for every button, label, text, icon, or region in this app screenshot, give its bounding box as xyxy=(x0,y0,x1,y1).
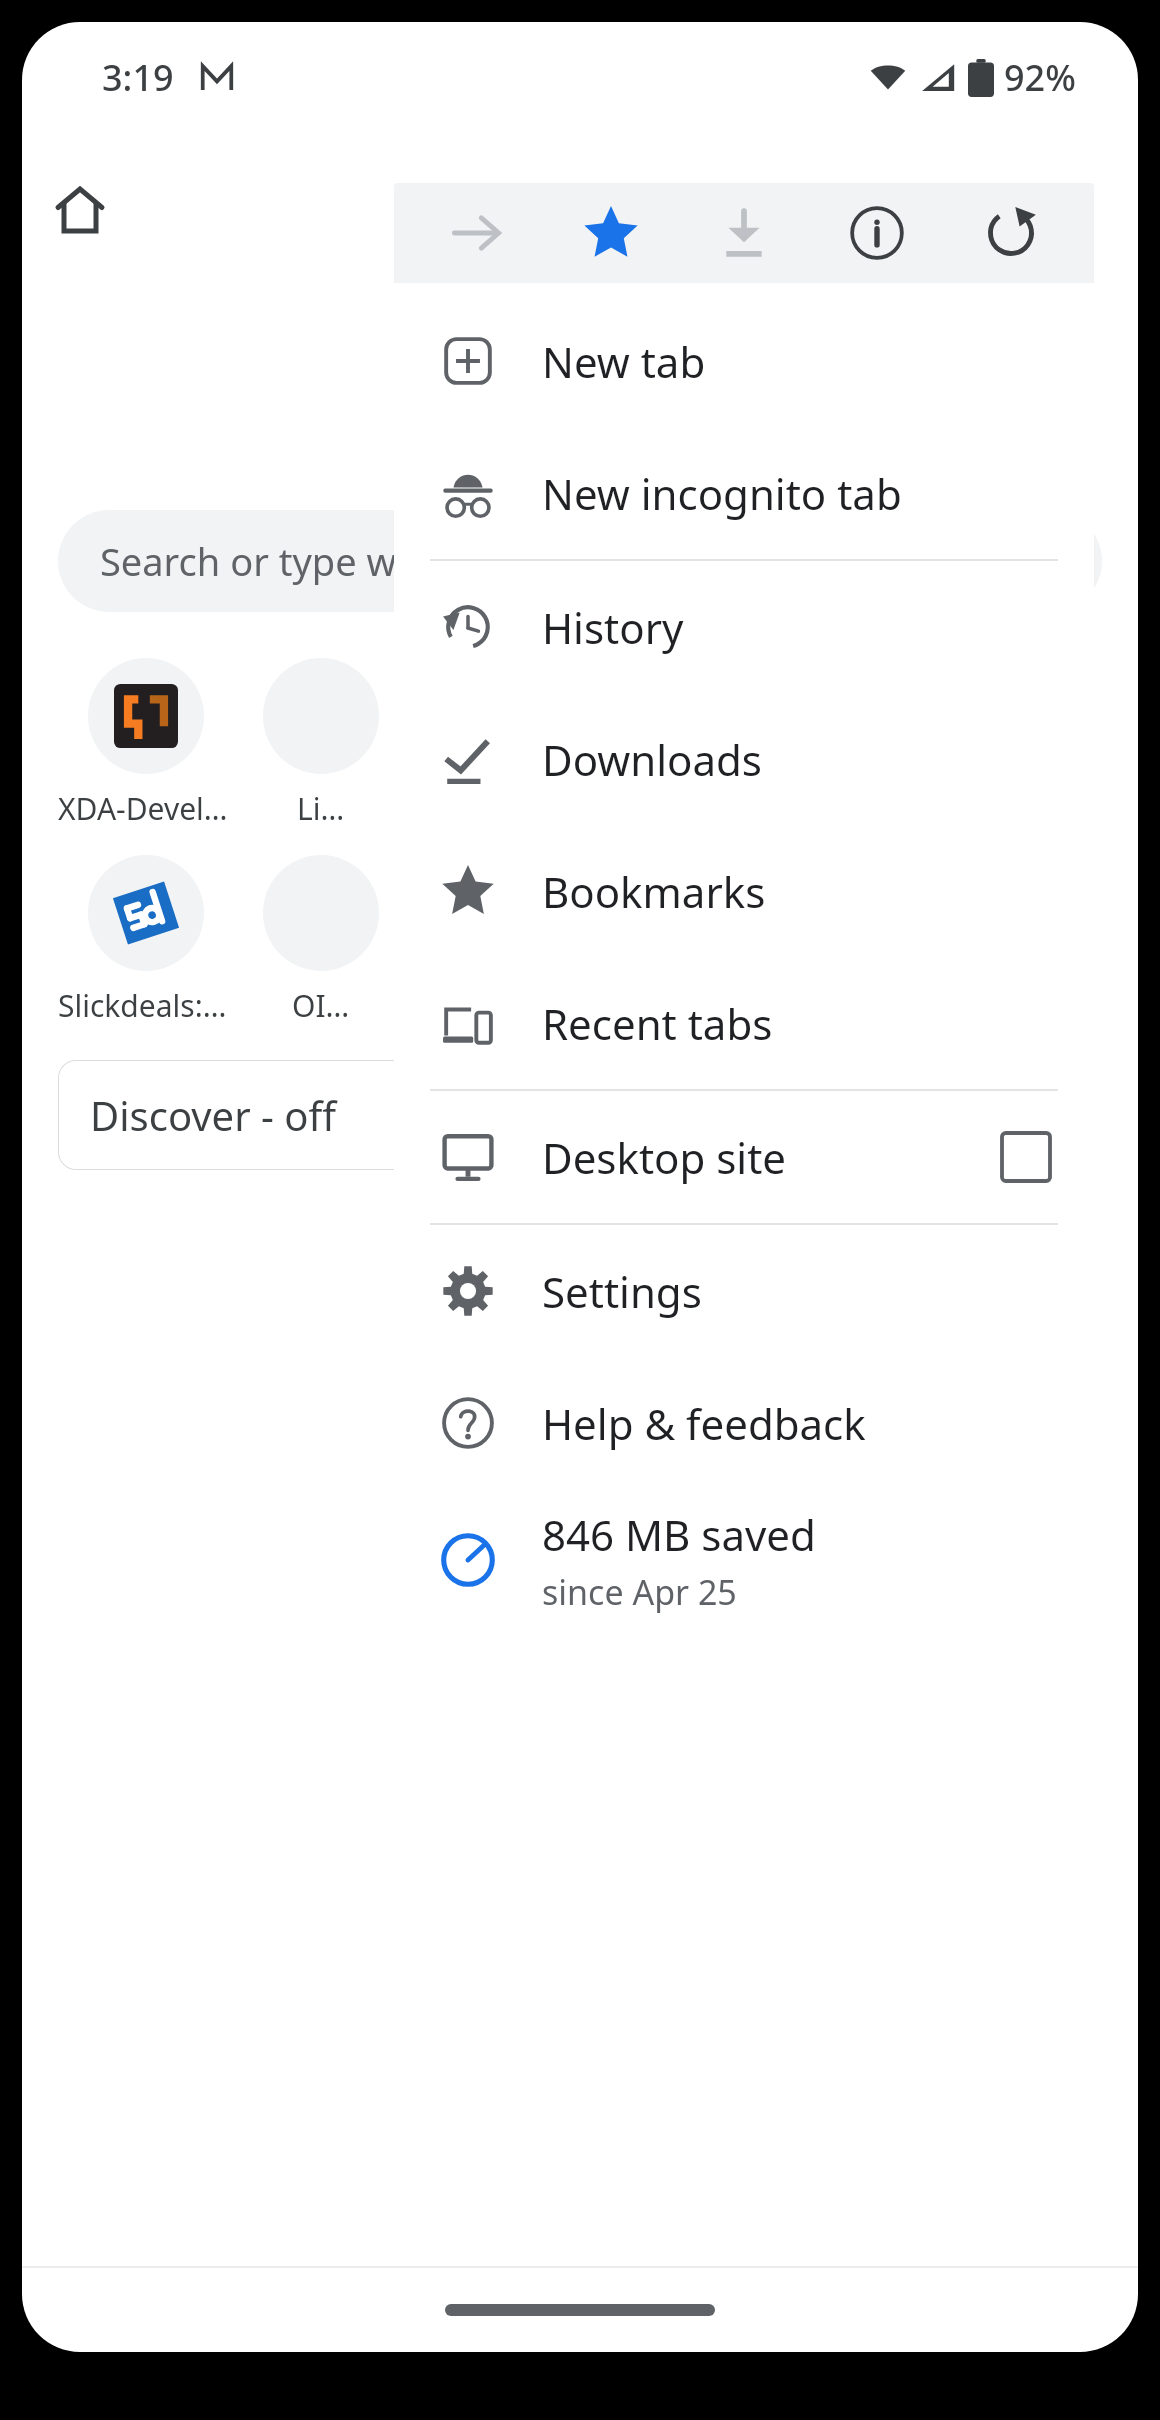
button[interactable]: Forward xyxy=(427,183,527,283)
button[interactable]: OI… xyxy=(233,855,408,1026)
button[interactable]: Reload xyxy=(961,183,1061,283)
staticText: Search or type web address xyxy=(100,535,592,587)
button[interactable] xyxy=(583,855,758,985)
button[interactable]: Page info xyxy=(827,183,927,283)
button[interactable]: Settings xyxy=(394,1225,1094,1357)
button[interactable]: Li… xyxy=(233,658,408,829)
staticText: Recent tabs xyxy=(542,995,1094,1052)
staticText: Li… xyxy=(297,788,345,829)
staticText: Slickdeals: … xyxy=(58,985,233,1026)
button[interactable]: Help & feedback xyxy=(394,1357,1094,1489)
button[interactable] xyxy=(408,855,583,985)
staticText: Discover - off xyxy=(90,1088,337,1142)
staticText: New tab xyxy=(542,333,1094,390)
staticText: Desktop site xyxy=(542,1129,1002,1186)
button[interactable]: Desktop site xyxy=(394,1091,1094,1223)
staticText: Settings xyxy=(542,1263,1094,1320)
button[interactable]: Downloads xyxy=(394,693,1094,825)
button[interactable]: Recent tabs xyxy=(394,957,1094,1089)
button[interactable]: Bookmarks xyxy=(394,825,1094,957)
button[interactable]: New tab xyxy=(394,295,1094,427)
staticText: 3:19 xyxy=(102,53,174,102)
button[interactable] xyxy=(408,658,583,788)
staticText: Help & feedback xyxy=(542,1395,1094,1452)
button[interactable]: XDA-Develo… xyxy=(58,658,233,829)
button[interactable]: Search or type web address xyxy=(58,510,1102,612)
staticText: since Apr 25 xyxy=(542,1569,737,1615)
staticText: Downloads xyxy=(542,731,1094,788)
staticText: 92% xyxy=(1004,53,1076,102)
button[interactable]: Bookmark xyxy=(561,183,661,283)
button[interactable]: 846 MB saved xyxy=(394,1489,1094,1631)
staticText: 846 MB saved xyxy=(542,1506,816,1563)
staticText: New incognito tab xyxy=(542,465,1094,522)
staticText: History xyxy=(542,599,1094,656)
staticText: OI… xyxy=(292,985,350,1026)
button[interactable]: Home xyxy=(42,162,118,258)
staticText: Bookmarks xyxy=(542,863,1094,920)
button[interactable] xyxy=(583,658,758,788)
button[interactable]: New incognito tab xyxy=(394,427,1094,559)
button[interactable]: Download page xyxy=(694,183,794,283)
staticText: XDA-Develo… xyxy=(58,788,233,829)
button[interactable]: Discover - off xyxy=(58,1060,618,1170)
button[interactable]: History xyxy=(394,561,1094,693)
button[interactable]: Slickdeals: … xyxy=(58,855,233,1026)
